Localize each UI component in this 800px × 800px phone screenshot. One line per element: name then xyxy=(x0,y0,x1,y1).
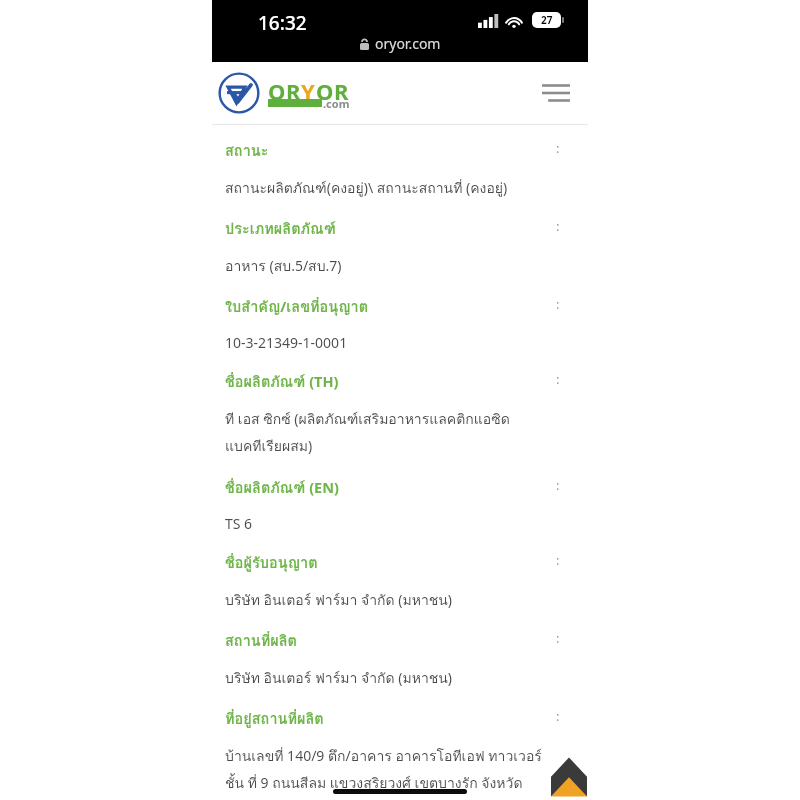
staticText: : xyxy=(556,476,560,494)
button[interactable]: Menu xyxy=(536,73,576,113)
button[interactable]: ชื่อผู้รับอนุญาต xyxy=(225,551,574,574)
staticText: อาหาร (สบ.5/สบ.7) xyxy=(225,255,560,277)
button[interactable]: ใบสำคัญ/เลขที่อนุญาต xyxy=(225,295,574,318)
staticText: OR xyxy=(316,76,349,106)
staticText: OR xyxy=(268,76,301,106)
button[interactable]: oryor.com xyxy=(360,34,441,53)
staticText: ชื่อผลิตภัณฑ์ (EN) xyxy=(225,476,556,499)
staticText: สถานะผลิตภัณฑ์(คงอยู่)\ สถานะสถานที่ (คง… xyxy=(225,177,560,199)
staticText: Y xyxy=(301,76,316,106)
button[interactable]: สถานะ xyxy=(225,139,574,162)
staticText: .com xyxy=(323,96,350,111)
staticText: : xyxy=(556,217,560,235)
staticText: สถานะ xyxy=(225,139,556,162)
staticText: บริษัท อินเตอร์ ฟาร์มา จำกัด (มหาชน) xyxy=(225,589,560,611)
staticText: : xyxy=(556,295,560,313)
button[interactable]: ORYOR home xyxy=(217,71,261,115)
staticText: : xyxy=(556,629,560,647)
staticText: : xyxy=(556,551,560,569)
staticText: ประเภทผลิตภัณฑ์ xyxy=(225,217,556,240)
staticText: 27 xyxy=(541,13,553,27)
staticText: ชื่อผลิตภัณฑ์ (TH) xyxy=(225,370,556,393)
staticText: สถานที่ผลิต xyxy=(225,629,556,652)
button[interactable]: ชื่อผลิตภัณฑ์ (EN) xyxy=(225,476,574,499)
button[interactable]: Scroll to top xyxy=(551,755,587,797)
staticText: บริษัท อินเตอร์ ฟาร์มา จำกัด (มหาชน) xyxy=(225,667,560,689)
staticText: บ้านเลขที่ 140/9 ตึก/อาคาร อาคารโอทีเอฟ … xyxy=(225,745,560,800)
button[interactable]: สถานที่ผลิต xyxy=(225,629,574,652)
staticText: 16:32 xyxy=(258,10,307,36)
staticText: ที่อยู่สถานที่ผลิต xyxy=(225,707,556,730)
staticText: : xyxy=(556,139,560,157)
staticText: : xyxy=(556,707,560,725)
staticText: oryor.com xyxy=(375,34,441,53)
staticText: TS 6 xyxy=(225,514,560,533)
button[interactable]: ที่อยู่สถานที่ผลิต xyxy=(225,707,574,730)
button[interactable]: ชื่อผลิตภัณฑ์ (TH) xyxy=(225,370,574,393)
staticText: : xyxy=(556,370,560,388)
staticText: ที เอส ซิกซ์ (ผลิตภัณฑ์เสริมอาหารแลคติกแ… xyxy=(225,408,560,458)
staticText: ชื่อผู้รับอนุญาต xyxy=(225,551,556,574)
button[interactable]: ประเภทผลิตภัณฑ์ xyxy=(225,217,574,240)
staticText: 10-3-21349-1-0001 xyxy=(225,333,560,352)
staticText: ใบสำคัญ/เลขที่อนุญาต xyxy=(225,295,556,318)
